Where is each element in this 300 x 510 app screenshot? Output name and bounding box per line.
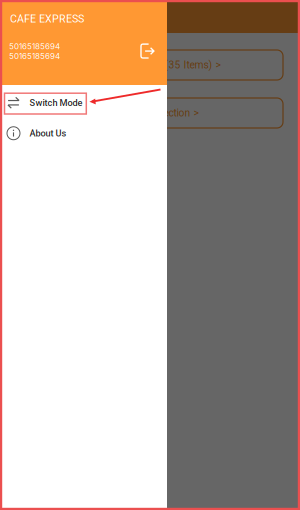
- button[interactable]: Switch Mode: [0, 87, 167, 118]
- staticText: Your Cart Contains (35 Items) >: [73, 59, 220, 71]
- staticText: Switch Mode: [29, 97, 82, 108]
- staticText: 50165185694: [9, 42, 60, 51]
- staticText: CAFE EXPRESS: [10, 12, 84, 25]
- button[interactable]: Your Cart Contains (35 Items) >: [17, 50, 283, 80]
- staticText: Choose Your Section >: [95, 107, 198, 119]
- staticText: 50165185694: [9, 51, 60, 61]
- button[interactable]: Choose Your Section >: [17, 98, 283, 128]
- staticText: About Us: [29, 128, 66, 139]
- button[interactable]: Log out: [140, 43, 155, 59]
- button[interactable]: About Us: [0, 118, 167, 148]
